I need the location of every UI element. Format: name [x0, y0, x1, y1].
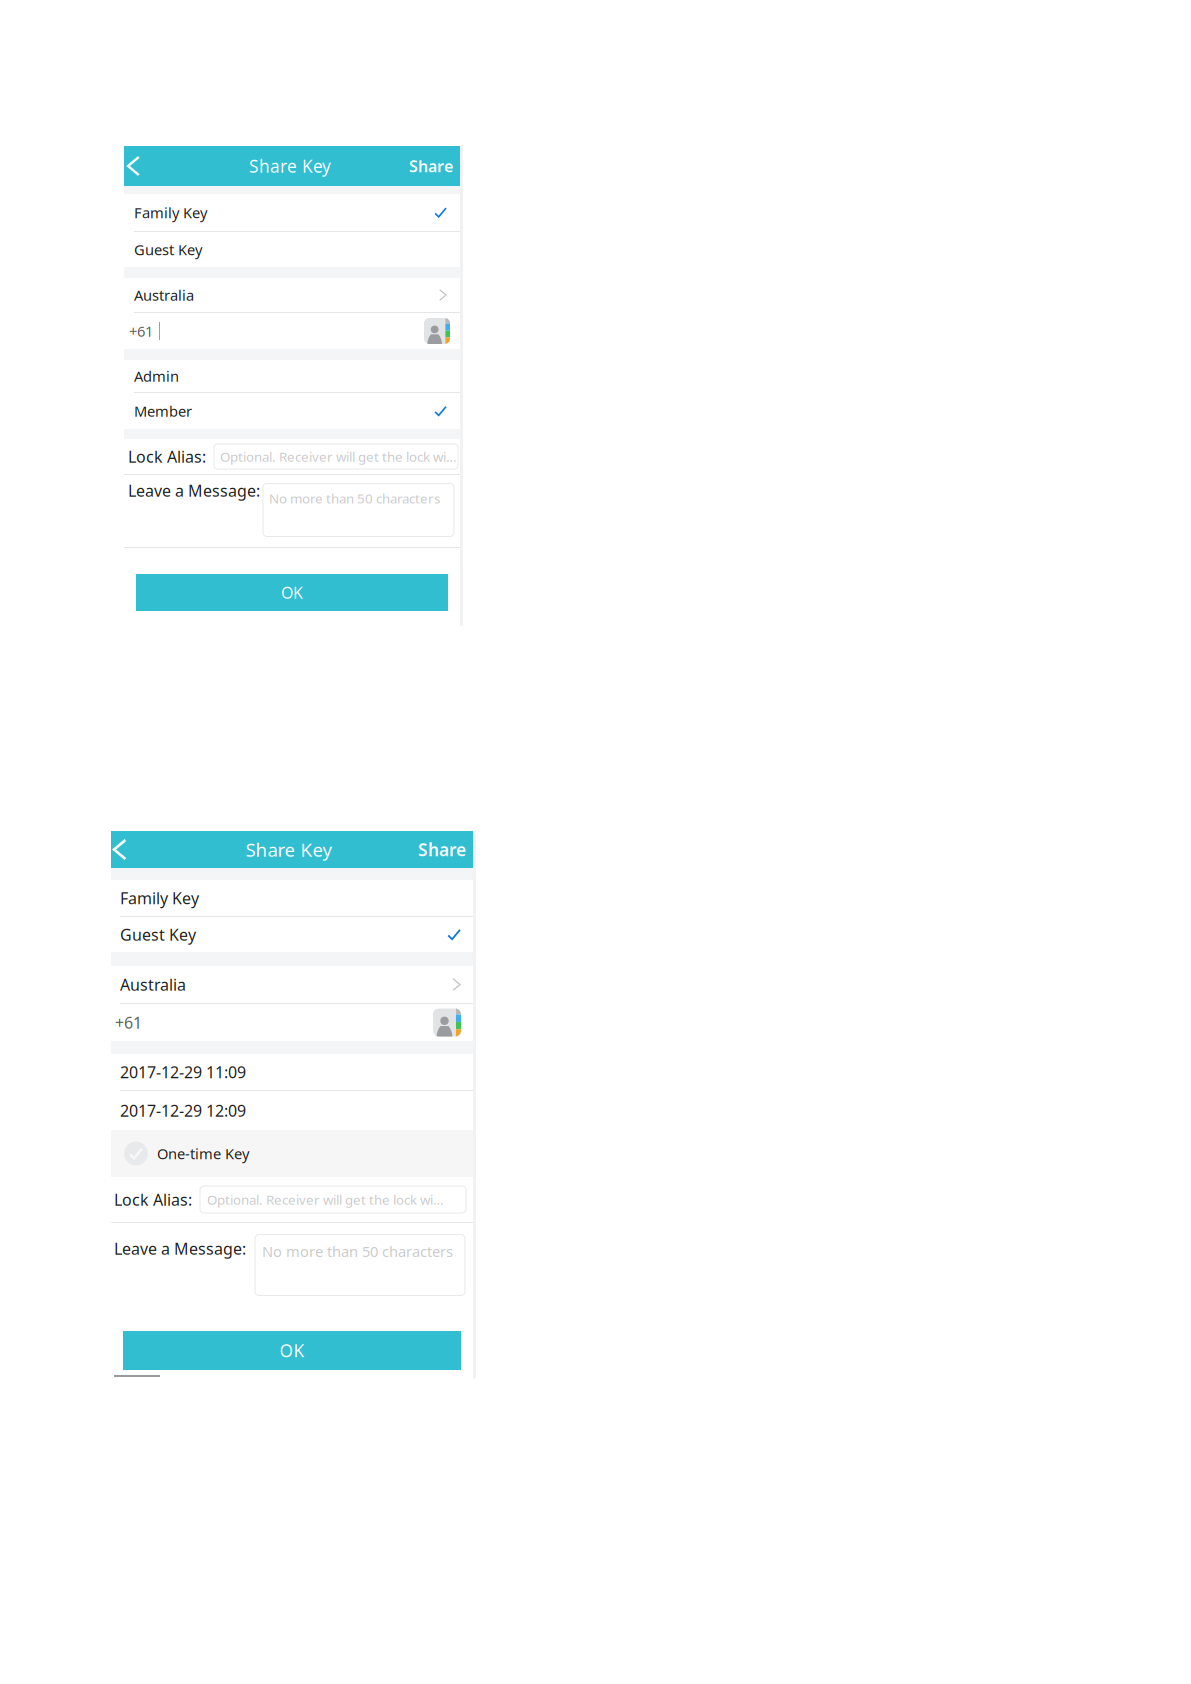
button[interactable]: OK	[136, 574, 448, 611]
staticText: Family Key	[134, 203, 207, 222]
staticText: 2017-12-29 11:09	[120, 1061, 246, 1083]
staticText: OK	[281, 582, 303, 603]
button[interactable]: Family Key	[124, 194, 460, 231]
staticText: Member	[134, 401, 192, 421]
staticText: Lock Alias:	[128, 446, 206, 467]
staticText: Leave a Message:	[128, 480, 260, 501]
staticText: Family Key	[120, 887, 199, 909]
staticText: Share	[409, 155, 453, 177]
staticText: Admin	[134, 366, 179, 386]
button[interactable]: Guest Key	[124, 232, 460, 267]
staticText: Australia	[120, 974, 186, 995]
staticText: Guest Key	[120, 924, 196, 945]
button[interactable]: Back	[111, 831, 137, 868]
staticText: Australia	[134, 285, 194, 305]
staticText: Share	[418, 838, 466, 861]
staticText: OK	[279, 1339, 304, 1362]
staticText: Lock Alias:	[114, 1189, 192, 1210]
staticText: Leave a Message:	[114, 1238, 246, 1259]
button[interactable]: Family Key	[111, 880, 473, 916]
staticText: Share Key	[245, 837, 332, 862]
button[interactable]: Admin	[124, 360, 460, 392]
button[interactable]: Guest Key	[111, 917, 473, 952]
button[interactable]: Share	[418, 831, 473, 868]
staticText: 2017-12-29 12:09	[120, 1100, 246, 1121]
staticText: Guest Key	[134, 240, 202, 259]
button[interactable]: 2017-12-29 12:09	[111, 1091, 473, 1130]
button[interactable]: OK	[123, 1331, 461, 1370]
button[interactable]: Australia	[124, 278, 460, 312]
button[interactable]: One-time Key	[111, 1130, 473, 1177]
staticText: Optional. Receiver will get the lock wi…	[220, 448, 457, 465]
button[interactable]: Back	[124, 146, 150, 186]
staticText: Share Key	[249, 154, 331, 177]
staticText: Optional. Receiver will get the lock wi…	[207, 1191, 444, 1208]
staticText: No more than 50 characters	[262, 1241, 453, 1261]
staticText: One-time Key	[157, 1144, 249, 1163]
staticText: +61	[115, 1012, 142, 1033]
button[interactable]: Australia	[111, 966, 473, 1003]
button[interactable]: 2017-12-29 11:09	[111, 1054, 473, 1090]
staticText: +61	[129, 321, 153, 341]
button[interactable]: Member	[124, 393, 460, 429]
button[interactable]: Share	[409, 146, 460, 186]
staticText: No more than 50 characters	[269, 489, 440, 507]
